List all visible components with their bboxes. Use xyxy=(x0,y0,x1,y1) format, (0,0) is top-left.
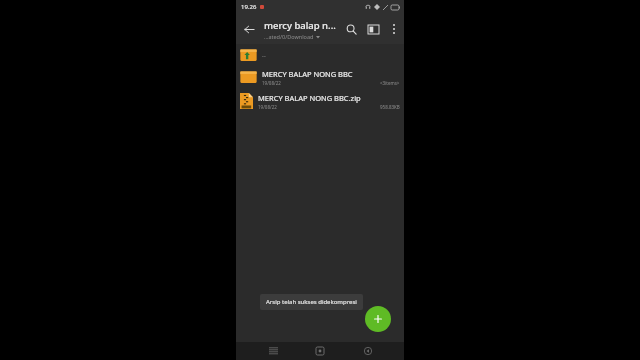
button[interactable]: Add xyxy=(365,306,391,332)
button[interactable]: MERCY BALAP NONG BBC xyxy=(236,65,404,89)
button[interactable]: Back xyxy=(236,16,262,42)
button[interactable]: Search xyxy=(340,18,362,40)
button[interactable]: MERCY BALAP NONG BBC.zip xyxy=(236,89,404,113)
staticText: 958.83KB xyxy=(380,104,400,110)
button[interactable]: Back xyxy=(357,342,379,360)
staticText: 19.26 xyxy=(241,3,257,11)
staticText: mercy balap n... xyxy=(264,19,336,32)
staticText: 19/08/22 xyxy=(262,80,281,86)
staticText: .. xyxy=(262,50,266,60)
staticText: MERCY BALAP NONG BBC xyxy=(262,69,353,79)
button[interactable]: .. xyxy=(236,44,404,65)
button[interactable]: More options xyxy=(384,19,404,39)
staticText: ...ated/0/Download xyxy=(264,33,314,40)
staticText: <3items> xyxy=(380,80,400,86)
staticText: Arsip telah sukses didekompresi xyxy=(266,298,357,306)
button[interactable]: View mode xyxy=(362,18,384,40)
staticText: MERCY BALAP NONG BBC.zip xyxy=(258,93,361,103)
staticText: 19/08/22 xyxy=(258,104,277,110)
button[interactable]: Home xyxy=(309,342,331,360)
button[interactable]: mercy balap n... xyxy=(264,19,340,40)
button[interactable]: Recent apps xyxy=(262,342,284,360)
